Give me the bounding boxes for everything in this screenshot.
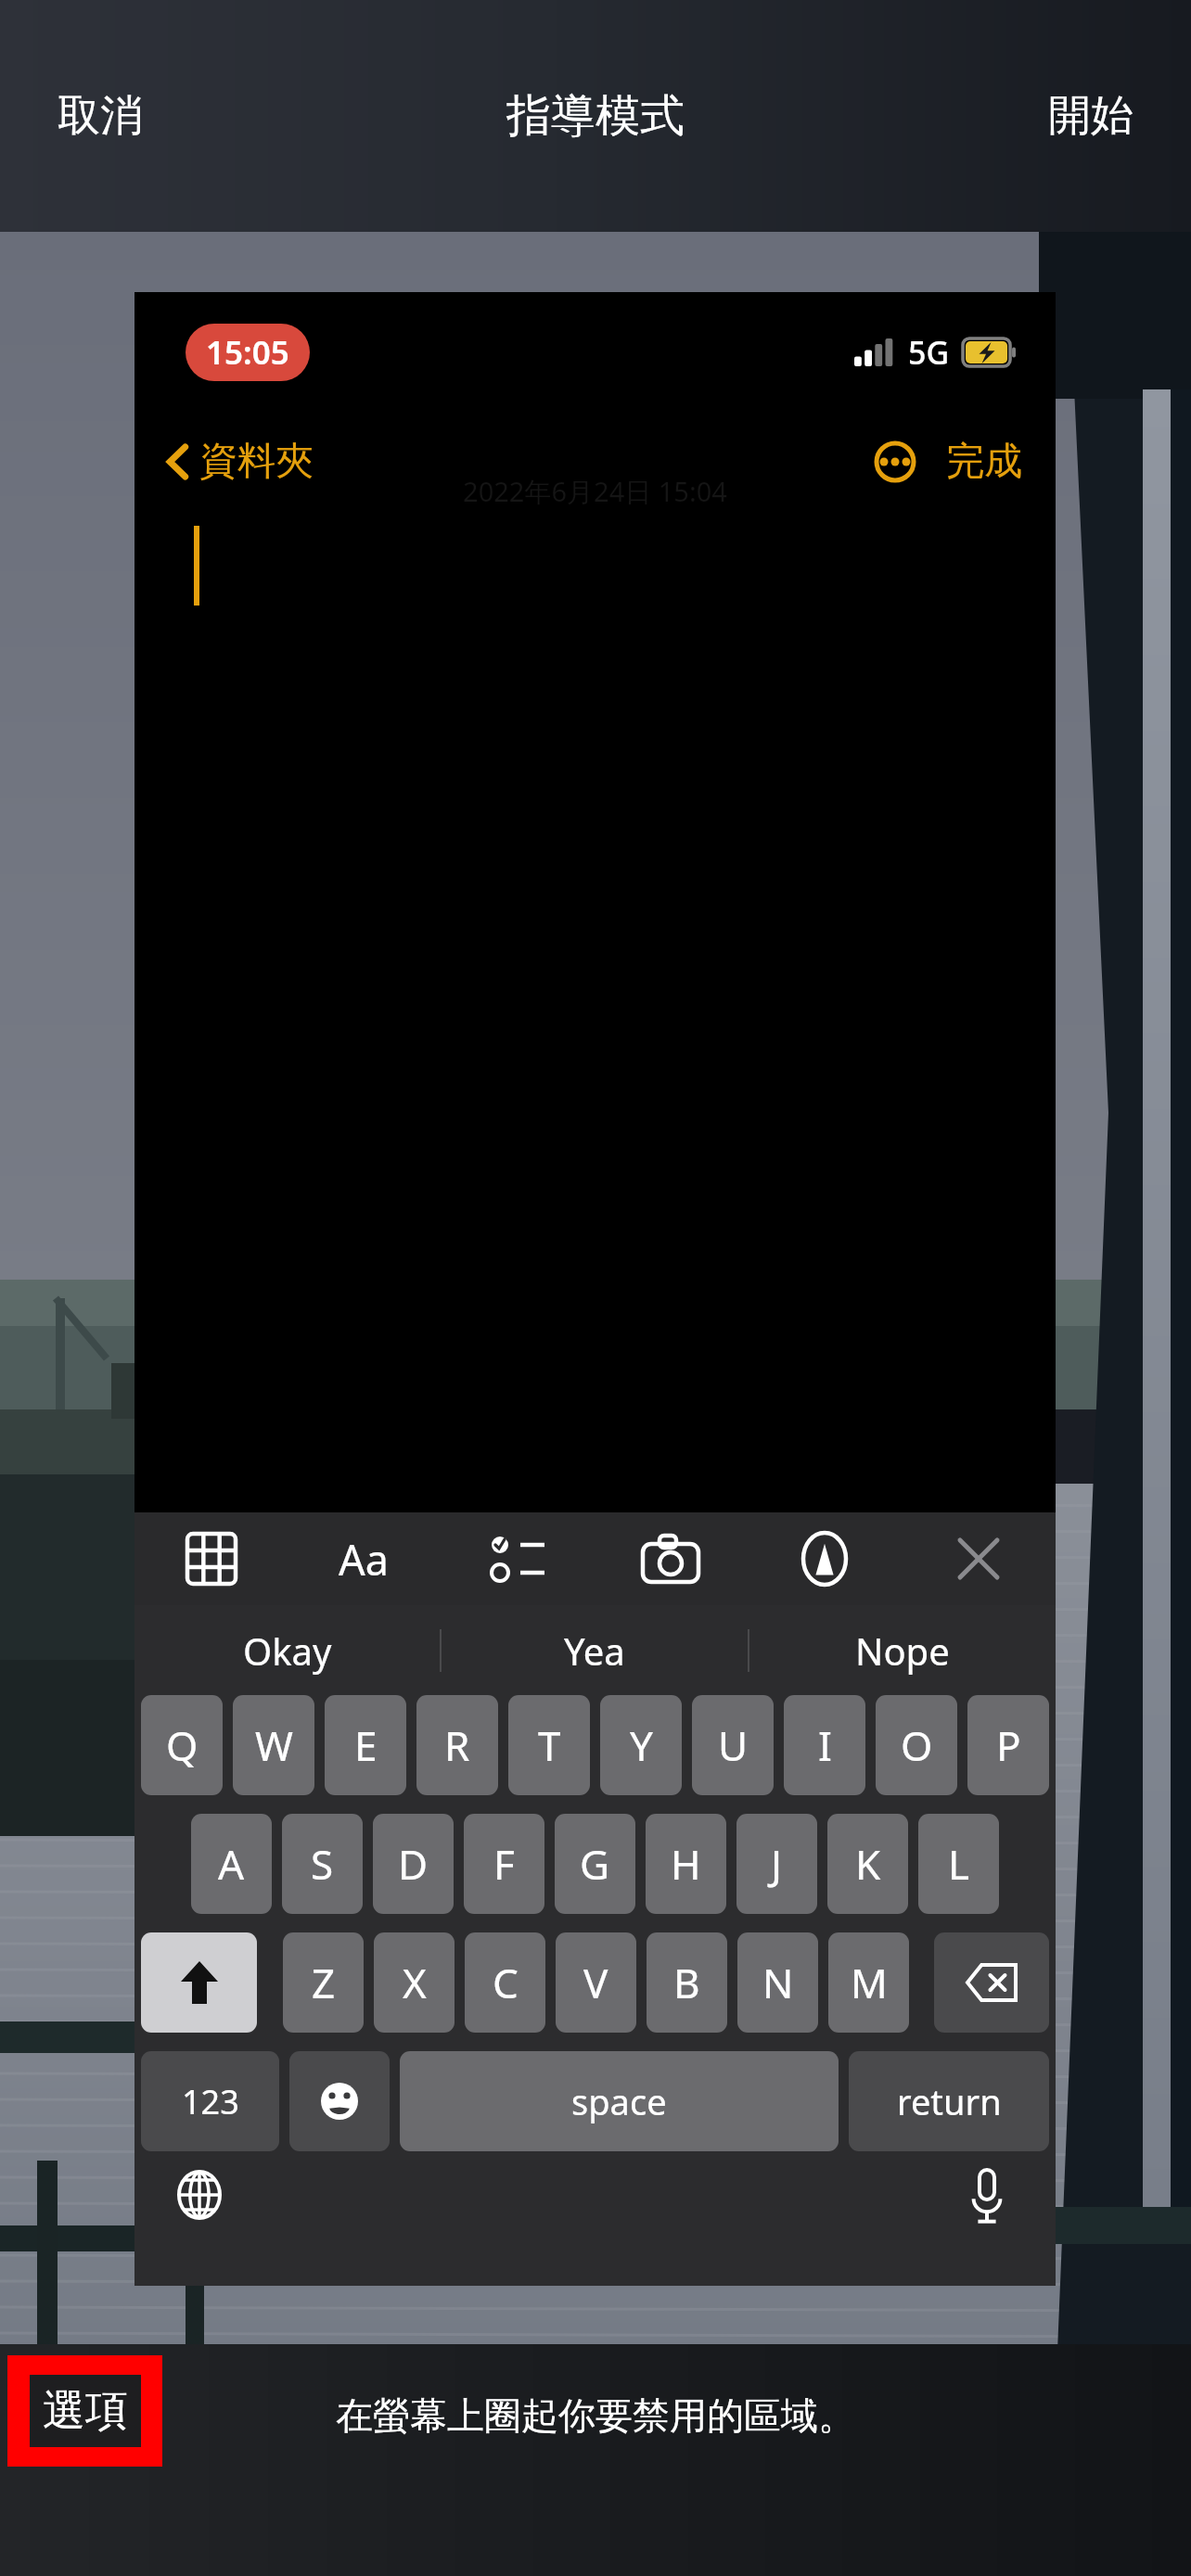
- staticText: N: [762, 1955, 794, 2010]
- button[interactable]: Z: [283, 1932, 364, 2033]
- staticText: S: [311, 1836, 334, 1892]
- staticText: G: [580, 1836, 610, 1892]
- staticText: Z: [312, 1955, 336, 2010]
- button[interactable]: H: [646, 1814, 726, 1914]
- staticText: 指導模式: [506, 88, 685, 144]
- staticText: space: [571, 2077, 667, 2125]
- staticText: 取消: [58, 89, 143, 143]
- staticText: 123: [182, 2079, 239, 2124]
- staticText: 在螢幕上圈起你要禁用的區域。: [336, 2392, 855, 2439]
- button[interactable]: D: [373, 1814, 454, 1914]
- button[interactable]: L: [918, 1814, 999, 1914]
- button[interactable]: O: [876, 1695, 957, 1795]
- staticText: X: [403, 1955, 427, 2010]
- staticText: 完成: [946, 438, 1022, 486]
- button[interactable]: E: [325, 1695, 406, 1795]
- staticText: 資料夾: [199, 438, 314, 486]
- button[interactable]: Yea: [442, 1605, 748, 1695]
- staticText: F: [493, 1836, 515, 1892]
- button[interactable]: 開始: [1031, 76, 1150, 156]
- staticText: Yea: [564, 1626, 625, 1676]
- button[interactable]: Y: [600, 1695, 682, 1795]
- button[interactable]: I: [784, 1695, 865, 1795]
- staticText: T: [538, 1717, 561, 1773]
- staticText: O: [901, 1717, 933, 1773]
- button[interactable]: Markup: [748, 1512, 902, 1605]
- staticText: A: [218, 1836, 245, 1892]
- staticText: 5G: [908, 331, 950, 374]
- staticText: I: [818, 1717, 832, 1773]
- staticText: U: [718, 1717, 749, 1773]
- button[interactable]: J: [736, 1814, 817, 1914]
- button[interactable]: return: [849, 2051, 1049, 2151]
- button[interactable]: Dictate: [961, 2162, 1013, 2231]
- button[interactable]: R: [416, 1695, 498, 1795]
- staticText: H: [671, 1836, 701, 1892]
- staticText: 2022年6月24日 15:04: [463, 473, 727, 510]
- staticText: 選項: [43, 2384, 128, 2438]
- button[interactable]: 資料夾: [155, 428, 327, 495]
- button[interactable]: T: [508, 1695, 590, 1795]
- staticText: K: [855, 1836, 881, 1892]
- staticText: D: [398, 1836, 429, 1892]
- button[interactable]: U: [692, 1695, 774, 1795]
- button[interactable]: Backspace: [934, 1932, 1049, 2033]
- button[interactable]: V: [556, 1932, 636, 2033]
- staticText: return: [897, 2077, 1002, 2125]
- button[interactable]: G: [555, 1814, 635, 1914]
- button[interactable]: N: [737, 1932, 818, 2033]
- staticText: Y: [630, 1717, 653, 1773]
- staticText: E: [354, 1717, 378, 1773]
- button[interactable]: W: [233, 1695, 314, 1795]
- staticText: Okay: [243, 1626, 332, 1676]
- staticText: C: [493, 1955, 519, 2010]
- staticText: J: [771, 1836, 783, 1892]
- button[interactable]: Text format: [288, 1512, 441, 1605]
- button[interactable]: Emoji: [289, 2051, 390, 2151]
- staticText: Q: [166, 1717, 198, 1773]
- button[interactable]: 123: [141, 2051, 279, 2151]
- button[interactable]: A: [191, 1814, 272, 1914]
- button[interactable]: X: [374, 1932, 455, 2033]
- button[interactable]: 選項: [7, 2355, 162, 2467]
- button[interactable]: Change keyboard: [170, 2162, 229, 2227]
- button[interactable]: space: [400, 2051, 839, 2151]
- button[interactable]: S: [282, 1814, 363, 1914]
- button[interactable]: Nope: [749, 1605, 1056, 1695]
- staticText: 開始: [1048, 89, 1133, 143]
- staticText: V: [583, 1955, 608, 2010]
- button[interactable]: Okay: [134, 1605, 440, 1695]
- button[interactable]: Camera: [594, 1512, 748, 1605]
- button[interactable]: C: [465, 1932, 545, 2033]
- button[interactable]: B: [647, 1932, 727, 2033]
- button[interactable]: Close: [902, 1512, 1056, 1605]
- staticText: B: [673, 1955, 700, 2010]
- staticText: M: [851, 1955, 888, 2010]
- staticText: R: [444, 1717, 470, 1773]
- staticText: W: [255, 1717, 293, 1773]
- button[interactable]: Checklist: [441, 1512, 594, 1605]
- button[interactable]: K: [827, 1814, 908, 1914]
- button[interactable]: Table: [134, 1512, 288, 1605]
- button[interactable]: M: [828, 1932, 909, 2033]
- button[interactable]: More options: [866, 433, 924, 491]
- button[interactable]: Shift: [141, 1932, 257, 2033]
- staticText: 15:05: [206, 330, 289, 375]
- button[interactable]: F: [464, 1814, 544, 1914]
- staticText: L: [948, 1836, 970, 1892]
- button[interactable]: 取消: [41, 76, 160, 156]
- staticText: Nope: [855, 1626, 950, 1676]
- button[interactable]: Q: [141, 1695, 223, 1795]
- button[interactable]: P: [967, 1695, 1049, 1795]
- staticText: Aa: [339, 1531, 390, 1588]
- button[interactable]: 完成: [937, 428, 1031, 495]
- staticText: P: [996, 1717, 1021, 1773]
